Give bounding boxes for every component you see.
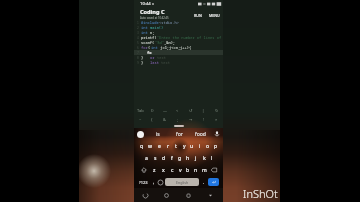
button[interactable]: q: [137, 140, 146, 152]
button[interactable]: Emoji: [157, 176, 164, 188]
button[interactable]: &: [158, 115, 171, 124]
staticText: y: [183, 143, 186, 150]
staticText: k: [203, 155, 206, 162]
button[interactable]: RUN: [193, 12, 203, 17]
staticText: &: [163, 117, 166, 122]
staticText: —: [163, 108, 167, 113]
staticText: 3: [137, 31, 139, 35]
staticText: i: [199, 143, 201, 150]
button[interactable]: v: [176, 164, 184, 176]
staticText: "Enter the number of lines of: [157, 35, 222, 40]
button[interactable]: d: [160, 152, 168, 164]
button[interactable]: →: [184, 115, 197, 124]
button[interactable]: ~: [134, 115, 146, 124]
button[interactable]: Shift: [137, 164, 150, 176]
button[interactable]: Home: [162, 191, 171, 200]
button[interactable]: is: [147, 128, 169, 140]
staticText: w: [148, 143, 153, 150]
staticText: v: [179, 167, 182, 174]
staticText: o: [206, 143, 210, 150]
button[interactable]: Recents: [184, 191, 193, 200]
button[interactable]: f: [168, 152, 176, 164]
staticText: MENU: [209, 13, 220, 18]
staticText: Coding C: [140, 8, 165, 16]
button[interactable]: ,: [150, 176, 157, 188]
staticText: last: [150, 60, 159, 65]
button[interactable]: Tab: [134, 106, 146, 115]
staticText: 5: [137, 41, 139, 45]
staticText: 6: [137, 46, 139, 50]
staticText: RUN: [194, 13, 202, 18]
button[interactable]: a: [142, 152, 151, 164]
button[interactable]: b: [184, 164, 192, 176]
button[interactable]: j: [192, 152, 200, 164]
staticText: m: [202, 167, 207, 174]
button[interactable]: food: [190, 128, 211, 140]
staticText: j: [195, 155, 197, 162]
button[interactable]: MENU: [208, 12, 221, 17]
button[interactable]: s: [151, 152, 160, 164]
button[interactable]: .: [200, 176, 207, 188]
button[interactable]: <: [171, 106, 184, 115]
button[interactable]: Google: [134, 128, 147, 140]
button[interactable]: p: [212, 140, 220, 152]
button[interactable]: o: [204, 140, 212, 152]
staticText: Auto saved at 10:42:45: [140, 16, 169, 20]
staticText: <: [176, 108, 179, 113]
staticText: English: [176, 180, 189, 185]
staticText: t: [175, 143, 177, 150]
button[interactable]: (): [146, 106, 158, 115]
button[interactable]: c: [168, 164, 176, 176]
staticText: e: [158, 143, 161, 150]
staticText: u: [190, 143, 194, 150]
button[interactable]: t: [172, 140, 180, 152]
button[interactable]: Enter: [208, 178, 219, 186]
button[interactable]: n: [192, 164, 200, 176]
button[interactable]: Hide keyboard: [206, 191, 215, 200]
staticText: Tab: [137, 108, 144, 113]
button[interactable]: English: [165, 178, 199, 186]
staticText: food: [195, 131, 206, 138]
staticText: ;: [177, 117, 179, 122]
button[interactable]: w: [146, 140, 155, 152]
staticText: f: [171, 155, 173, 162]
staticText: 10:44: [140, 1, 151, 7]
staticText: (): [151, 108, 154, 113]
button[interactable]: ×: [210, 115, 223, 124]
button[interactable]: ↻: [210, 106, 223, 115]
staticText: x: [162, 167, 165, 174]
staticText: 8: [137, 56, 139, 60]
button[interactable]: z: [150, 164, 159, 176]
button[interactable]: Backspace: [208, 164, 220, 176]
staticText: text: [157, 55, 166, 60]
button[interactable]: l: [208, 152, 216, 164]
button[interactable]: !: [197, 115, 210, 124]
button[interactable]: x: [159, 164, 168, 176]
button[interactable]: |: [197, 106, 210, 115]
button[interactable]: m: [200, 164, 208, 176]
button[interactable]: Voice input: [211, 128, 223, 140]
button[interactable]: ?123: [137, 176, 150, 188]
staticText: b: [186, 167, 190, 174]
button[interactable]: —: [158, 106, 171, 115]
button[interactable]: {: [146, 115, 158, 124]
button[interactable]: for: [169, 128, 190, 140]
button[interactable]: h: [184, 152, 192, 164]
button[interactable]: Back: [141, 191, 150, 200]
staticText: ~: [139, 117, 142, 122]
staticText: int: [151, 45, 158, 50]
button[interactable]: k: [200, 152, 208, 164]
staticText: int: [141, 30, 150, 35]
button[interactable]: e: [155, 140, 164, 152]
staticText: .: [203, 179, 205, 186]
button[interactable]: y: [180, 140, 188, 152]
button[interactable]: ;: [171, 115, 184, 124]
staticText: n: [194, 167, 198, 174]
button[interactable]: i: [196, 140, 204, 152]
button[interactable]: r: [164, 140, 172, 152]
button[interactable]: ↺: [184, 106, 197, 115]
staticText: main(): [150, 25, 164, 30]
button[interactable]: g: [176, 152, 184, 164]
button[interactable]: u: [188, 140, 196, 152]
staticText: a: [145, 155, 148, 162]
